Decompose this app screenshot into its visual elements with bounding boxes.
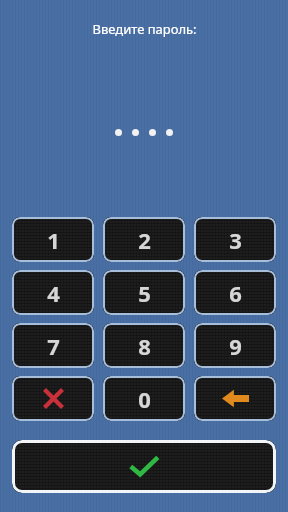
button[interactable]: 3: [194, 217, 276, 262]
button[interactable]: 1: [12, 217, 94, 262]
staticText: 9: [229, 331, 242, 361]
button[interactable]: 7: [12, 323, 94, 368]
button[interactable]: 6: [194, 270, 276, 315]
button[interactable]: 8: [103, 323, 185, 368]
button[interactable]: Confirm: [12, 440, 276, 493]
button[interactable]: 2: [103, 217, 185, 262]
staticText: 8: [138, 331, 151, 361]
staticText: 4: [47, 278, 60, 308]
staticText: 5: [138, 278, 151, 308]
button[interactable]: 4: [12, 270, 94, 315]
button[interactable]: Clear: [12, 376, 94, 421]
staticText: 2: [138, 225, 151, 255]
staticText: 3: [229, 225, 242, 255]
staticText: 7: [47, 331, 60, 361]
button[interactable]: Backspace: [194, 376, 276, 421]
staticText: 0: [138, 384, 151, 414]
button[interactable]: 0: [103, 376, 185, 421]
staticText: Введите пароль:: [92, 20, 197, 38]
staticText: 1: [47, 225, 60, 255]
staticText: 6: [229, 278, 242, 308]
button[interactable]: 9: [194, 323, 276, 368]
button[interactable]: 5: [103, 270, 185, 315]
